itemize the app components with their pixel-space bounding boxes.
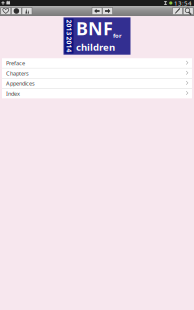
button[interactable]: Favourites <box>0 6 11 16</box>
button[interactable]: Settings <box>11 6 22 16</box>
button[interactable]: Appendices <box>2 79 192 88</box>
button[interactable]: Chapters <box>2 69 192 78</box>
button[interactable]: Forward <box>102 6 113 16</box>
staticText: Chapters <box>6 69 29 77</box>
staticText: Appendices <box>6 80 35 87</box>
staticText: Index <box>6 90 20 97</box>
button[interactable]: Index <box>2 89 192 98</box>
button[interactable]: Interactions <box>22 6 32 16</box>
staticText: 2014 <box>61 40 77 49</box>
staticText: 2013 <box>61 23 77 32</box>
button[interactable]: Preface <box>2 58 192 68</box>
button[interactable]: Back <box>92 6 102 16</box>
staticText: 13:54 <box>174 0 192 7</box>
button[interactable]: Notes <box>172 6 183 16</box>
staticText: children <box>76 40 115 54</box>
button[interactable]: Search <box>183 6 193 16</box>
staticText: for <box>113 31 122 39</box>
staticText: Preface <box>6 59 25 67</box>
staticText: BNF <box>76 16 113 40</box>
